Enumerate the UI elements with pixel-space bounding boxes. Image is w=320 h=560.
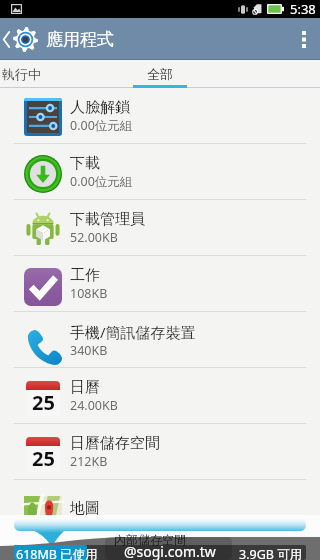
- button[interactable]: 執行中: [0, 60, 96, 88]
- button[interactable]: 25: [0, 368, 320, 424]
- staticText: 下載管理員: [70, 210, 145, 229]
- staticText: 全部: [147, 66, 173, 82]
- staticText: 0.00位元組: [70, 173, 133, 190]
- staticText: 下載: [70, 154, 100, 173]
- staticText: 人臉解鎖: [70, 98, 130, 117]
- staticText: 0.00位元組: [70, 117, 133, 134]
- button[interactable]: 25: [0, 424, 320, 480]
- staticText: 25: [32, 445, 55, 471]
- staticText: 108KB: [70, 285, 108, 302]
- staticText: 執行中: [2, 66, 41, 82]
- staticText: 應用程式: [46, 29, 114, 50]
- staticText: 340KB: [70, 342, 108, 359]
- staticText: 5:38: [290, 0, 316, 18]
- button[interactable]: 人臉解鎖: [0, 88, 320, 144]
- staticText: 25: [32, 389, 55, 415]
- staticText: 3.9GB 可用: [239, 546, 303, 560]
- button[interactable]: 下載: [0, 144, 320, 200]
- staticText: 212KB: [70, 453, 108, 470]
- staticText: 52.00KB: [70, 229, 118, 246]
- button[interactable]: More options: [288, 18, 320, 60]
- staticText: 地圖: [70, 499, 100, 518]
- button[interactable]: Up, Settings: [0, 18, 39, 60]
- staticText: 日曆: [70, 378, 100, 397]
- button[interactable]: 工作: [0, 256, 320, 312]
- button[interactable]: 全部: [112, 60, 208, 88]
- staticText: @sogi.com.tw: [124, 542, 216, 560]
- button[interactable]: 手機/簡訊儲存裝置: [0, 312, 320, 368]
- staticText: 手機/簡訊儲存裝置: [70, 322, 196, 342]
- staticText: 工作: [70, 266, 100, 285]
- button[interactable]: 下載管理員: [0, 200, 320, 256]
- staticText: 618MB 已使用: [16, 546, 98, 560]
- staticText: 24.00KB: [70, 397, 118, 414]
- button[interactable]: 地圖: [0, 480, 320, 536]
- staticText: 日曆儲存空間: [70, 434, 160, 453]
- staticText: 內部儲存空間: [114, 532, 186, 547]
